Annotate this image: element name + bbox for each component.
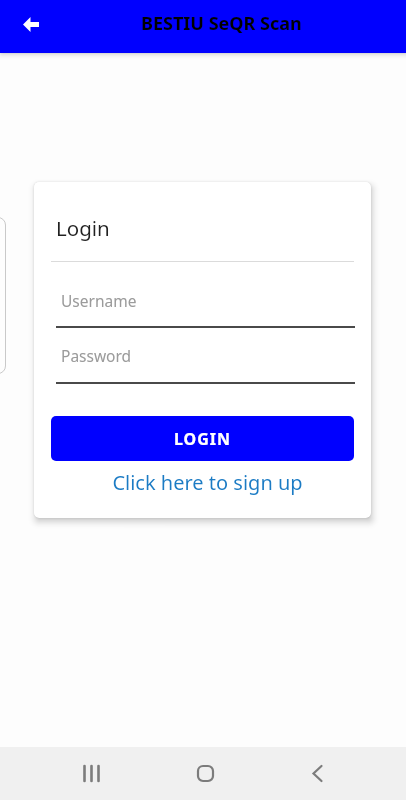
button[interactable] xyxy=(181,749,229,797)
button[interactable] xyxy=(293,749,341,797)
button[interactable] xyxy=(14,7,48,41)
button[interactable]: Password xyxy=(61,345,132,366)
button[interactable]: LOGIN xyxy=(51,416,354,461)
button[interactable]: Click here to sign up xyxy=(39,469,371,496)
staticText: Login xyxy=(56,214,110,242)
staticText: BESTIU SeQR Scan xyxy=(141,11,302,36)
staticText: LOGIN xyxy=(174,428,232,450)
button[interactable] xyxy=(67,749,115,797)
button[interactable]: Username xyxy=(61,290,137,311)
